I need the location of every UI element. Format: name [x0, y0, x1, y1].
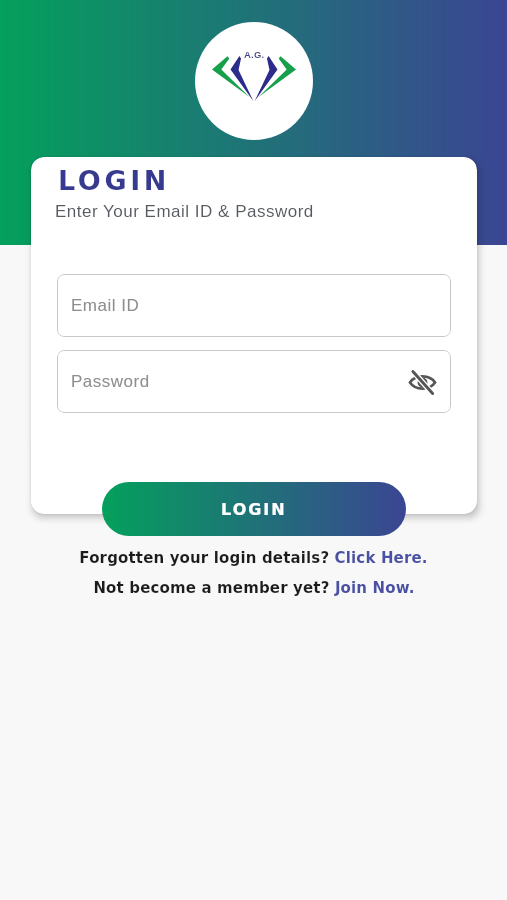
button[interactable]: Not become a member yet? Join Now. — [93, 579, 415, 596]
staticText: Email ID — [71, 296, 140, 315]
button[interactable]: Password — [57, 350, 451, 413]
staticText: LOGIN — [221, 500, 287, 519]
staticText: Password — [71, 372, 150, 391]
staticText: Enter Your Email ID & Password — [55, 202, 314, 221]
staticText: A.G. — [244, 49, 265, 60]
button[interactable]: LOGIN — [102, 482, 406, 536]
button[interactable]: Show password — [405, 365, 439, 399]
button[interactable]: Forgotten your login details? Click Here… — [79, 549, 428, 566]
staticText: LOGIN — [58, 165, 170, 196]
button[interactable]: Email ID — [57, 274, 451, 337]
